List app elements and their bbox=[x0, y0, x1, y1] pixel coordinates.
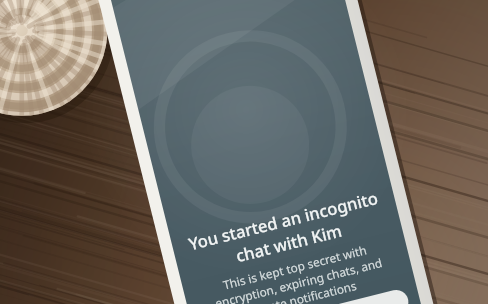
button[interactable]: Incognito chat with Kim bbox=[0, 0, 488, 304]
